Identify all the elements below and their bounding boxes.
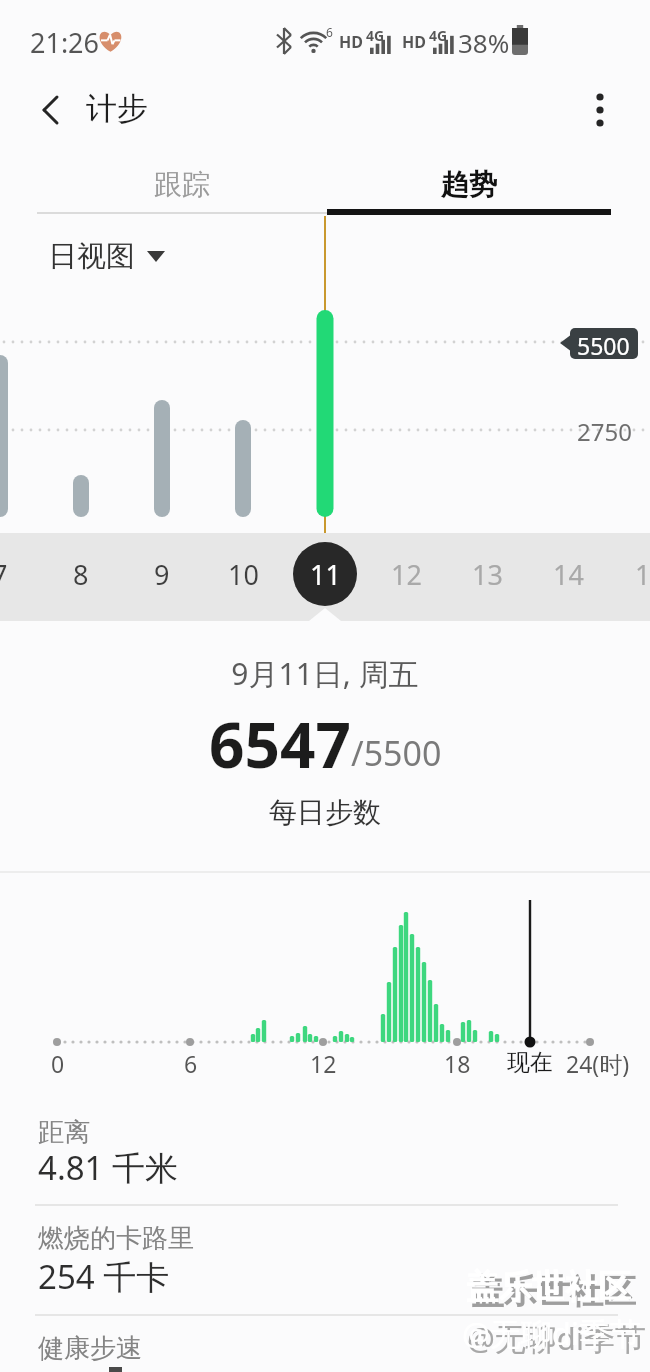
staticText: 2750 xyxy=(577,415,632,448)
staticText: 5500 xyxy=(577,330,630,361)
staticText: 38% xyxy=(458,25,510,60)
staticText: 12 xyxy=(391,556,422,593)
button[interactable]: 11 xyxy=(285,530,365,618)
staticText: 距离 xyxy=(38,1116,90,1149)
staticText: 11 xyxy=(310,556,341,593)
staticText: 计步 xyxy=(86,89,148,128)
button[interactable]: 日视图 xyxy=(48,238,165,275)
staticText: 盖乐世社区 xyxy=(466,1266,631,1308)
staticText: 趋势 xyxy=(441,167,497,202)
staticText: 跟踪 xyxy=(154,167,210,202)
staticText: 4.81 千米 xyxy=(38,1145,179,1190)
button[interactable] xyxy=(26,84,74,136)
staticText: @无聊di季节 xyxy=(462,1312,641,1354)
staticText: 8 xyxy=(73,556,89,593)
staticText: 9月11日, 周五 xyxy=(0,653,650,694)
button[interactable]: 13 xyxy=(447,530,527,618)
staticText: 4G xyxy=(429,26,448,45)
staticText: 9 xyxy=(154,556,170,593)
staticText: 7 xyxy=(0,556,8,593)
button[interactable] xyxy=(0,1106,650,1205)
button[interactable]: 趋势 xyxy=(327,155,611,213)
button[interactable]: 12 xyxy=(366,530,446,618)
staticText: 健康步速 xyxy=(38,1332,142,1365)
staticText: 日视图 xyxy=(48,238,135,275)
staticText: 10 xyxy=(228,556,259,593)
button[interactable]: 10 xyxy=(203,530,283,618)
staticText: /5500 xyxy=(351,730,442,776)
button[interactable]: 15 xyxy=(610,530,650,618)
staticText: 13 xyxy=(472,556,503,593)
staticText: 18 xyxy=(444,1048,471,1079)
button[interactable]: 9 xyxy=(122,530,202,618)
staticText: 4G xyxy=(366,26,385,45)
button[interactable] xyxy=(576,82,624,138)
staticText: 6 xyxy=(326,24,333,40)
staticText: HD xyxy=(402,31,426,53)
staticText: 15 xyxy=(635,556,650,593)
button[interactable]: 跟踪 xyxy=(37,155,327,213)
button[interactable] xyxy=(0,1206,650,1314)
staticText: 21:26 xyxy=(30,24,100,61)
staticText: 现在 xyxy=(507,1048,553,1077)
staticText: 24(时) xyxy=(566,1048,630,1079)
staticText: 盖乐世社区 xyxy=(471,1271,636,1313)
staticText: 12 xyxy=(310,1048,337,1079)
staticText: 每日步数 xyxy=(0,795,650,830)
staticText: 6 xyxy=(184,1048,198,1079)
staticText: 0 xyxy=(51,1048,65,1079)
staticText: 254 千卡 xyxy=(38,1254,170,1299)
button[interactable] xyxy=(0,1316,650,1372)
button[interactable]: 14 xyxy=(528,530,608,618)
staticText: HD xyxy=(339,31,363,53)
button[interactable]: 7 xyxy=(0,530,40,618)
staticText: 6547 xyxy=(209,702,351,786)
staticText: @无聊di季节 xyxy=(467,1317,646,1359)
button[interactable]: 8 xyxy=(41,530,121,618)
staticText: 燃烧的卡路里 xyxy=(38,1222,194,1255)
staticText: 14 xyxy=(553,556,584,593)
